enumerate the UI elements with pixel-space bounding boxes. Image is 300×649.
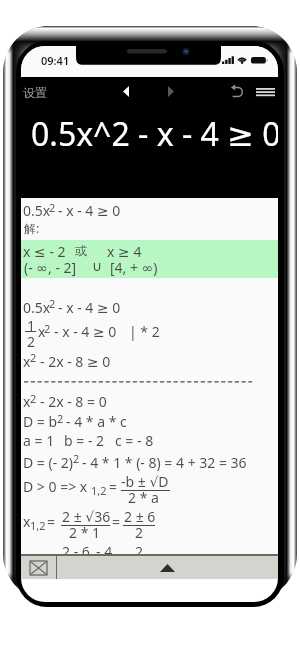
staticText: - x - 4 ≥ 0 [58, 298, 121, 317]
staticText: - 4 * 1 * (- 8) = 4 + 32 = 36 [82, 453, 247, 472]
staticText: x [23, 512, 31, 531]
staticText: [4, + ∞) [110, 258, 158, 277]
staticText: 2 ± √36 [62, 507, 111, 526]
staticText: 2 [44, 321, 51, 336]
staticText: 解: [24, 220, 40, 236]
staticText: 2 ± 6 [124, 507, 156, 526]
staticText: 0.5x [23, 201, 51, 220]
staticText: = [47, 512, 56, 531]
staticText: 09:41 [41, 53, 70, 68]
button[interactable]: 设置 [21, 81, 53, 104]
staticText: - 2x - 8 ≥ 0 [40, 352, 111, 371]
staticText: - x - 4 ≥ 0 [54, 322, 117, 341]
staticText: = [47, 547, 56, 566]
staticText: 2 [30, 350, 37, 365]
staticText: 或 [75, 243, 87, 258]
button[interactable]: Previous step [115, 80, 137, 102]
staticText: x [23, 392, 31, 411]
staticText: x ≤ - 2 [23, 242, 66, 261]
staticText: (- ∞, - 2] [24, 258, 77, 277]
button[interactable]: Show more [57, 556, 278, 579]
staticText: 0.5x^2 - x - 4 ≥ 0 [31, 112, 278, 156]
staticText: 0.5x [23, 298, 51, 317]
staticText: D = b [23, 412, 58, 431]
staticText: c = - 8 [115, 431, 154, 450]
staticText: | * 2 [129, 322, 160, 341]
staticText: -b ± √D [121, 472, 169, 491]
staticText: x [23, 547, 31, 566]
staticText: 1,2 [30, 518, 46, 533]
staticText: D = (- 2) [23, 453, 74, 472]
staticText: 2 [27, 332, 36, 351]
staticText: 1 [27, 316, 36, 335]
staticText: 2 * a [128, 488, 159, 507]
staticText: 2 [49, 200, 56, 215]
staticText: x ≥ 4 [107, 242, 142, 261]
staticText: a = 1 [23, 431, 55, 450]
button[interactable]: Next step [160, 80, 182, 102]
button[interactable]: Menu [253, 80, 277, 104]
staticText: 2 [73, 451, 80, 466]
staticText: - 4 [96, 542, 113, 561]
staticText: 2 - 6 [62, 542, 90, 561]
button[interactable]: Send by email [21, 556, 56, 579]
staticText: - 2x - 8 = 0 [40, 392, 107, 411]
staticText: x [38, 322, 46, 341]
staticText: 1,2 [30, 552, 46, 567]
staticText: = [112, 512, 121, 531]
button[interactable]: Undo [225, 79, 249, 103]
staticText: - 4 * a * c [66, 412, 127, 431]
staticText: 2 [49, 296, 56, 311]
staticText: D > 0 => x [23, 477, 88, 496]
staticText: 1,2 [91, 483, 107, 498]
staticText: 2 [30, 391, 37, 406]
staticText: 2 * 1 [69, 523, 101, 542]
staticText: - x - 4 ≥ 0 [58, 201, 121, 220]
staticText: b = - 2 [64, 431, 105, 450]
staticText: ∪ [92, 258, 103, 274]
staticText: x [23, 352, 31, 371]
staticText: 2 [135, 523, 144, 542]
staticText: 2 [135, 542, 144, 561]
staticText: 2 [57, 411, 64, 426]
staticText: = [109, 477, 118, 496]
